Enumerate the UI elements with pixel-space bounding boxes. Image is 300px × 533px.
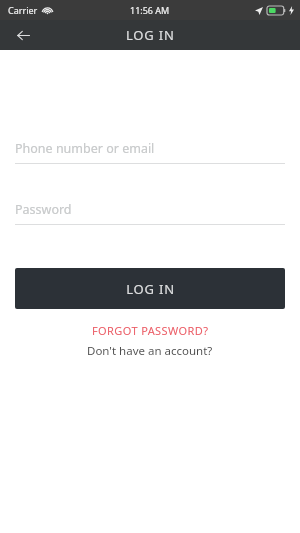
staticText: LOG IN: [126, 280, 175, 298]
staticText: Password: [15, 201, 72, 218]
staticText: Phone number or email: [15, 140, 155, 157]
button[interactable]: Don't have an account?: [0, 342, 300, 360]
staticText: Don't have an account?: [87, 343, 213, 359]
staticText: 11:56 AM: [130, 4, 170, 16]
staticText: Carrier: [8, 4, 38, 16]
staticText: FORGOT PASSWORD?: [92, 323, 209, 338]
button[interactable]: Phone number or email: [15, 140, 285, 164]
button[interactable]: Back: [8, 20, 38, 50]
button[interactable]: FORGOT PASSWORD?: [0, 321, 300, 339]
button[interactable]: LOG IN: [15, 268, 285, 309]
staticText: LOG IN: [126, 26, 175, 44]
button[interactable]: Password: [15, 201, 285, 225]
